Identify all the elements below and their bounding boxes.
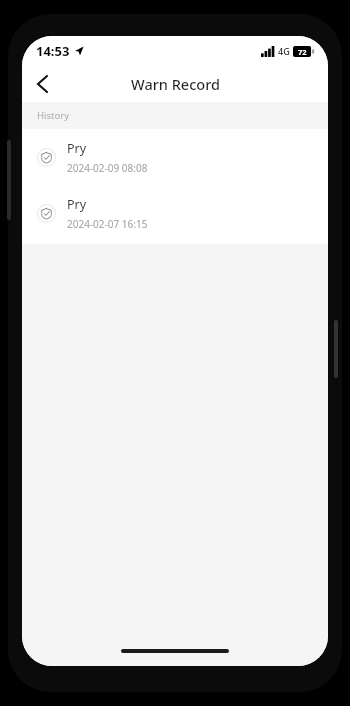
staticText: 4G	[278, 45, 290, 57]
button[interactable]: Pry	[22, 129, 328, 185]
staticText: Pry	[67, 196, 87, 213]
staticText: 2024-02-07 16:15	[67, 217, 148, 231]
staticText: 14:53	[36, 42, 70, 60]
staticText: 2024-02-09 08:08	[67, 161, 148, 175]
button[interactable]: Back	[22, 66, 62, 102]
staticText: History	[37, 109, 69, 122]
staticText: 72	[298, 47, 307, 57]
staticText: Pry	[67, 140, 87, 157]
staticText: Warn Record	[131, 74, 220, 94]
button[interactable]: Pry	[22, 185, 328, 241]
